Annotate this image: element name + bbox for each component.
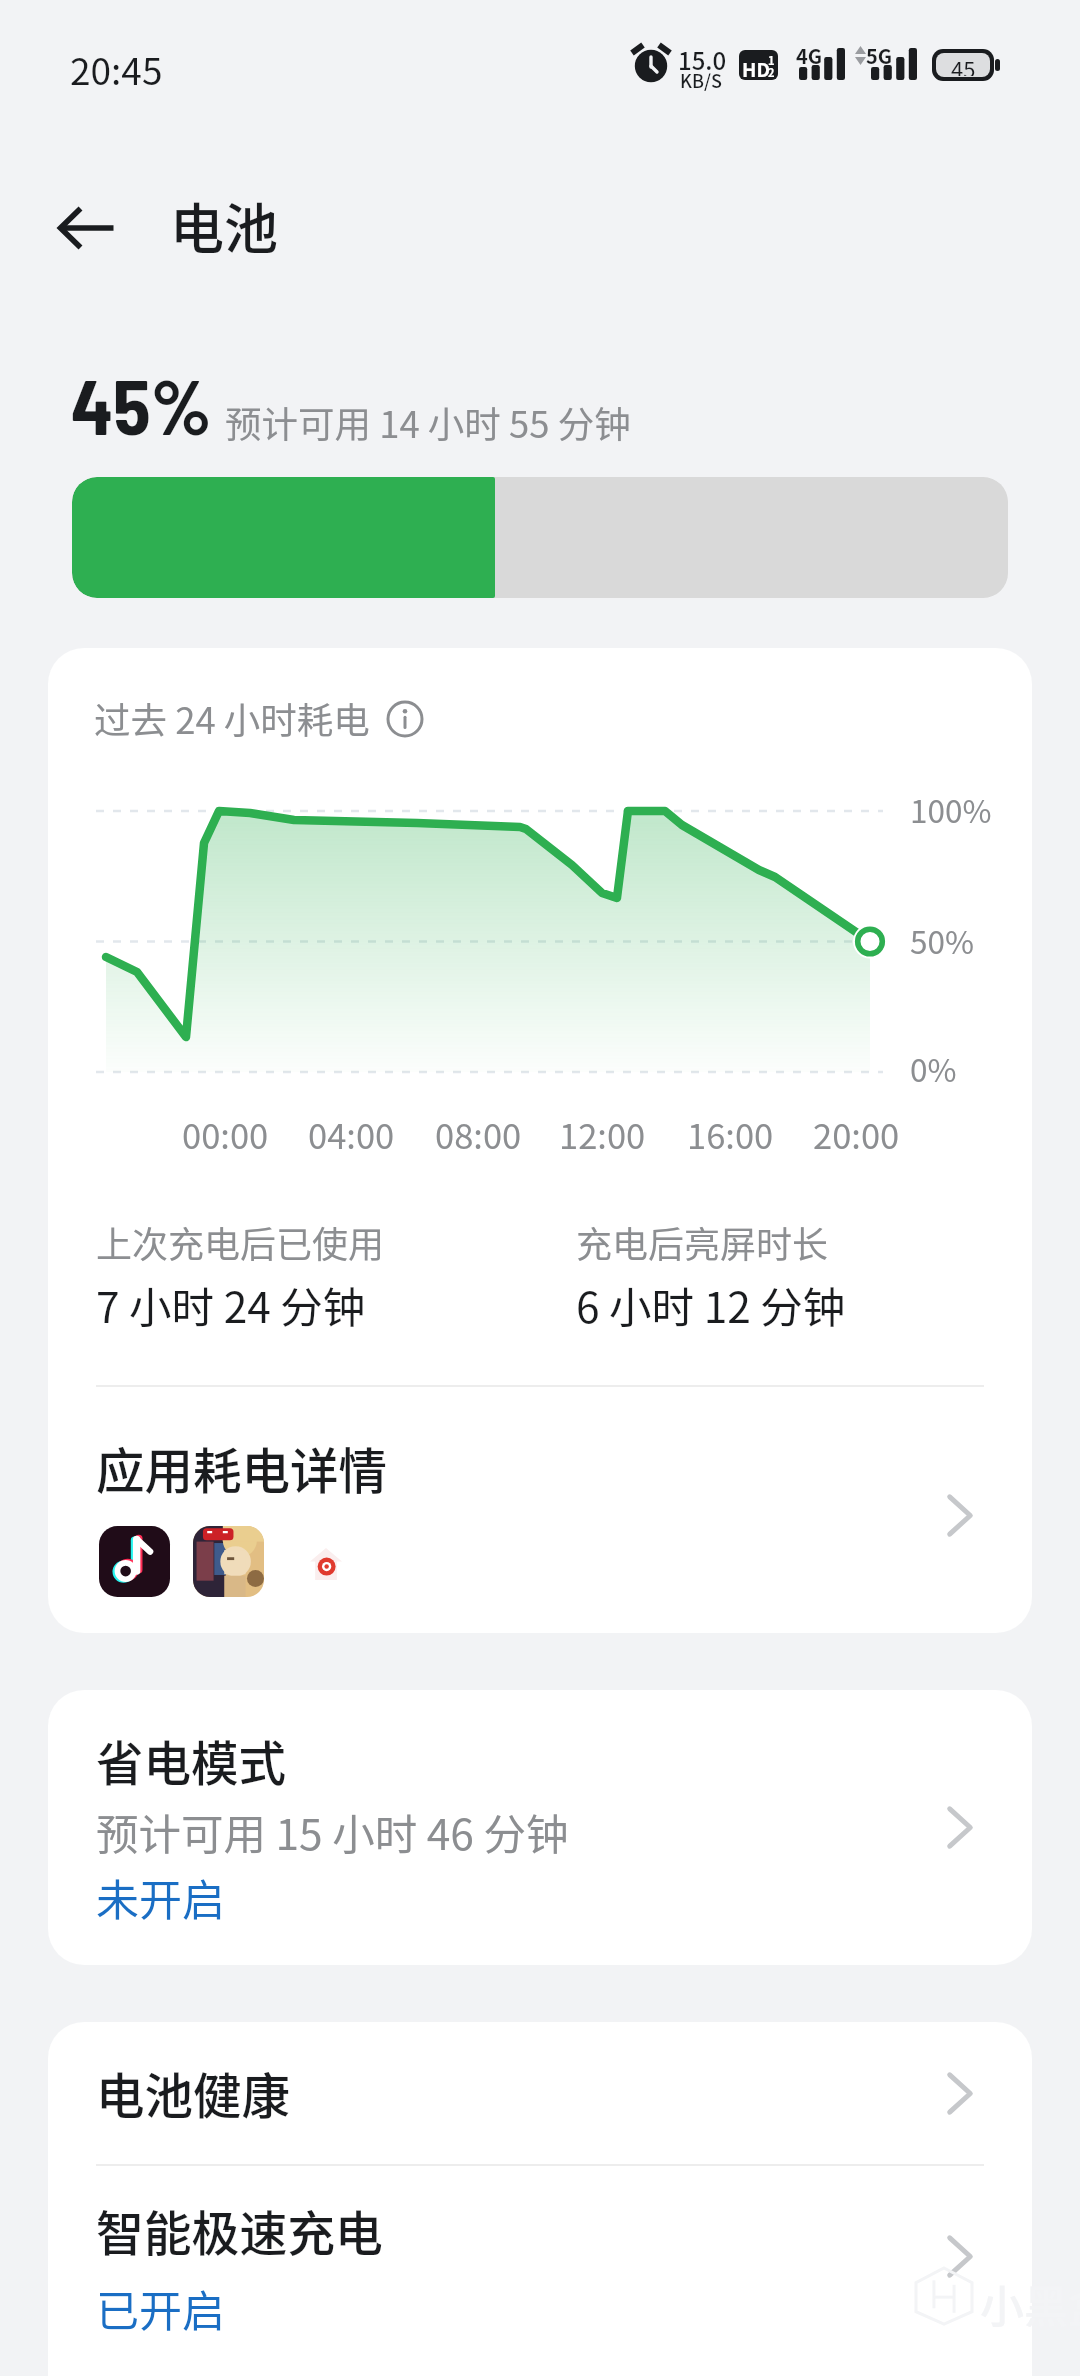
staticText: 预计可用 14 小时 55 分钟 [225,396,631,449]
staticText: 20:00 [813,1109,900,1159]
button[interactable]: 省电模式 [48,1690,1032,1965]
staticText: 15.0 [678,42,727,77]
staticText: 电池 [170,186,278,264]
staticText: 16:00 [687,1109,774,1159]
staticText: 电池健康 [96,2058,291,2128]
staticText: 应用耗电详情 [96,1433,388,1503]
staticText: 12:00 [559,1109,646,1159]
staticText: 50% [910,917,974,963]
staticText: 6 小时 12 分钟 [576,1274,846,1336]
staticText: 7 小时 24 分钟 [96,1274,366,1336]
staticText: 04:00 [308,1109,395,1159]
button[interactable]: 应用耗电详情 [48,1408,1032,1633]
staticText: 2 [768,64,775,80]
staticText: 上次充电后已使用 [96,1216,385,1268]
staticText: 100% [910,786,992,832]
staticText: 未开启 [96,1866,225,1928]
staticText: 智能极速充电 [96,2196,383,2265]
button[interactable]: 电池健康 [48,2022,1032,2164]
staticText: 00:00 [182,1109,269,1159]
staticText: 0% [910,1045,957,1091]
staticText: 过去 24 小时耗电 [94,692,370,745]
staticText: 5G [866,41,893,70]
staticText: 45% [71,358,212,450]
staticText: 45 [951,53,976,76]
staticText: KB/S [680,67,722,93]
staticText: 已开启 [96,2277,225,2339]
button[interactable]: Info [385,699,425,739]
staticText: 省电模式 [96,1726,286,1795]
staticText: 小黑盒 [980,2272,1080,2336]
staticText: 4G [796,41,823,70]
staticText: HD [742,55,770,80]
staticText: 预计可用 15 小时 46 分钟 [96,1801,569,1863]
staticText: 充电后亮屏时长 [576,1216,829,1268]
button[interactable]: 智能极速充电 [48,2166,1032,2376]
staticText: 08:00 [435,1109,522,1159]
staticText: 20:45 [70,42,163,96]
staticText: 1 [768,52,775,68]
button[interactable]: Back [43,184,131,272]
